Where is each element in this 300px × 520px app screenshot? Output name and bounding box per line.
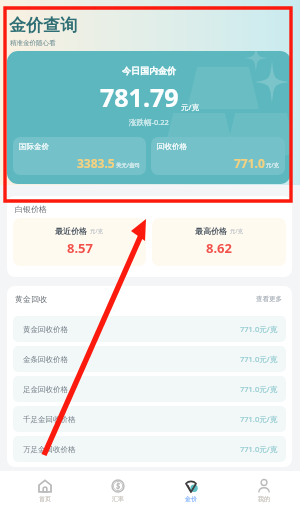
staticText: 千足金回收价格	[23, 415, 76, 424]
button[interactable]: 万足金回收价格	[13, 436, 286, 462]
staticText: 最近价格	[55, 226, 87, 236]
staticText: 771.0元/克	[240, 444, 277, 454]
button[interactable]: 国际金价	[13, 137, 146, 175]
button[interactable]: 足金回收价格	[13, 376, 286, 402]
staticText: 元/克	[181, 102, 199, 112]
button[interactable]: Gold price	[154, 471, 227, 520]
staticText: 771.0元/克	[240, 384, 277, 394]
staticText: 万足金回收价格	[23, 445, 76, 454]
staticText: 今日国内金价	[7, 65, 291, 76]
button[interactable]: Exchange rate	[81, 471, 154, 520]
staticText: 金条回收价格	[23, 355, 68, 364]
staticText: 回收价格	[157, 142, 187, 151]
staticText: 771.0元/克	[240, 414, 277, 424]
staticText: 3383.5	[77, 155, 115, 171]
staticText: 我的	[258, 495, 270, 503]
button[interactable]: 回收价格	[151, 137, 285, 175]
staticText: 足金回收价格	[23, 385, 68, 394]
button[interactable]: 千足金回收价格	[13, 406, 286, 432]
button[interactable]: 金条回收价格	[13, 346, 286, 372]
staticText: 黄金回收	[15, 294, 47, 304]
staticText: 元/克	[230, 227, 244, 235]
staticText: 汇率	[112, 495, 124, 503]
staticText: 美元/盎司	[116, 161, 141, 169]
staticText: 8.57	[67, 239, 93, 257]
staticText: 查看更多	[256, 295, 282, 303]
staticText: 8.62	[206, 239, 232, 257]
button[interactable]: Profile	[227, 471, 300, 520]
staticText: 最高价格	[195, 226, 227, 236]
staticText: 首页	[39, 495, 51, 503]
button[interactable]: 最高价格	[152, 218, 286, 266]
button[interactable]: 查看更多	[254, 293, 284, 305]
staticText: 781.79	[100, 80, 179, 114]
staticText: 771.0	[234, 155, 265, 171]
staticText: 精准金价随心看	[10, 39, 56, 47]
staticText: 771.0元/克	[240, 324, 277, 334]
staticText: 涨跌幅-0.22	[7, 117, 291, 127]
button[interactable]: 最近价格	[13, 218, 146, 266]
staticText: 金价	[185, 495, 197, 503]
button[interactable]: Home	[8, 471, 81, 520]
staticText: 元/克	[266, 161, 280, 169]
staticText: 白银价格	[15, 204, 47, 214]
staticText: 黄金回收价格	[23, 325, 68, 334]
staticText: 金价查询	[9, 15, 77, 36]
staticText: 国际金价	[19, 142, 49, 151]
button[interactable]: 黄金回收价格	[13, 316, 286, 342]
staticText: 元/克	[90, 227, 104, 235]
staticText: 771.0元/克	[240, 354, 277, 364]
